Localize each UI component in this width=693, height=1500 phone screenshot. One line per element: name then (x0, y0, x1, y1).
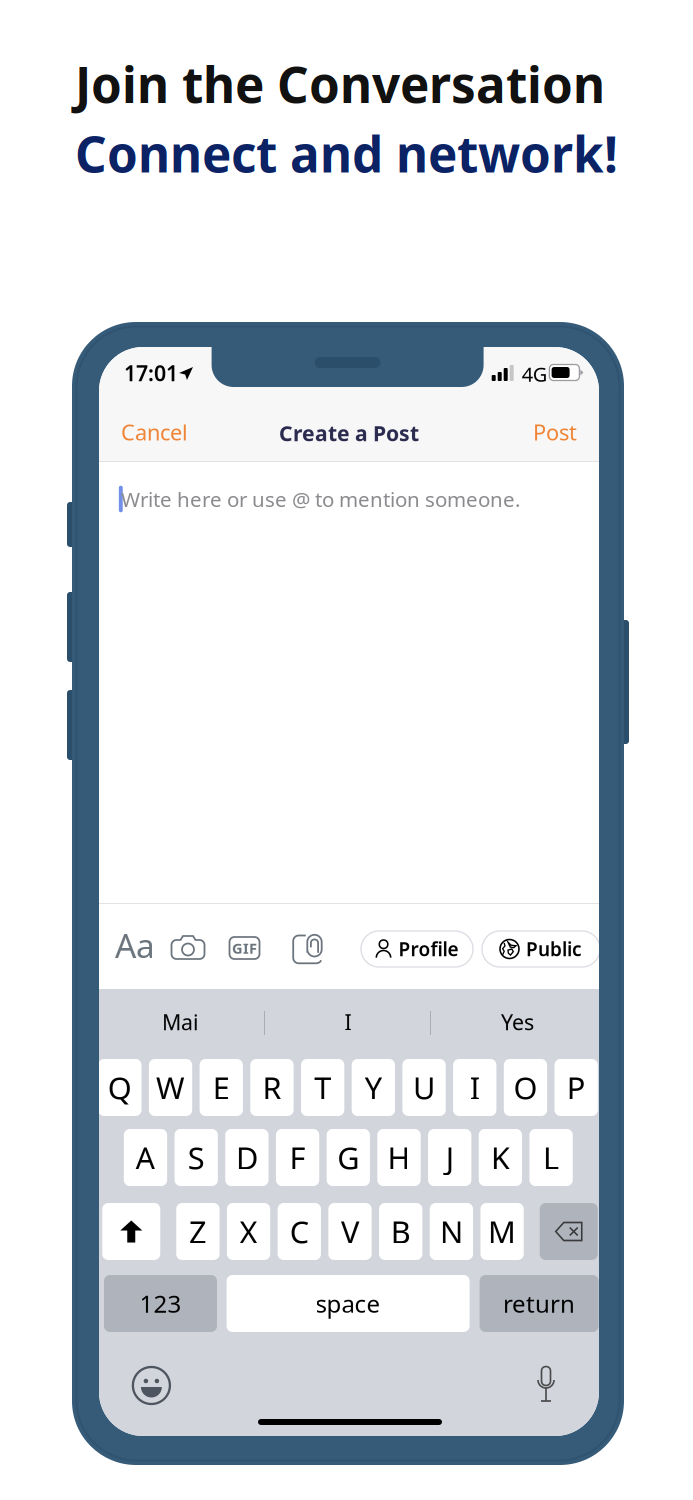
button[interactable]: Text formatting (113, 925, 157, 965)
button[interactable]: Camera (170, 935, 205, 960)
button[interactable]: W (149, 1059, 192, 1116)
button[interactable]: H (377, 1129, 421, 1186)
staticText: T (314, 1067, 331, 1108)
button[interactable]: Emoji (133, 1367, 170, 1404)
staticText: Post (533, 417, 577, 447)
staticText: U (413, 1067, 435, 1108)
staticText: Mai (162, 1008, 199, 1036)
staticText: Profile (398, 936, 458, 962)
button[interactable]: GIF (229, 937, 259, 959)
button[interactable]: Y (352, 1059, 395, 1116)
button[interactable]: P (554, 1059, 598, 1116)
button[interactable]: S (174, 1129, 218, 1186)
button[interactable]: Profile (361, 931, 473, 967)
button[interactable]: space (227, 1275, 470, 1332)
staticText: V (341, 1211, 359, 1252)
staticText: I (470, 1067, 480, 1108)
button[interactable]: Post (489, 416, 577, 448)
button[interactable]: I (453, 1059, 496, 1116)
button[interactable]: Attach file (292, 934, 323, 964)
staticText: Q (108, 1067, 132, 1108)
staticText: Public (526, 936, 582, 962)
button[interactable]: N (430, 1203, 473, 1260)
button[interactable]: K (479, 1129, 522, 1186)
staticText: G (337, 1137, 359, 1178)
button[interactable]: M (480, 1203, 524, 1260)
staticText: F (290, 1137, 306, 1178)
button[interactable]: V (328, 1203, 372, 1260)
staticText: Join the Conversation (75, 51, 605, 116)
button[interactable]: G (327, 1129, 370, 1186)
staticText: return (503, 1288, 575, 1319)
button[interactable]: X (227, 1203, 270, 1260)
button[interactable]: D (225, 1129, 268, 1186)
staticText: P (567, 1067, 586, 1108)
staticText: W (156, 1067, 185, 1108)
staticText: R (262, 1067, 281, 1108)
staticText: GIF (232, 938, 257, 958)
staticText: Cancel (121, 417, 188, 447)
button[interactable]: I (268, 1007, 428, 1037)
button[interactable]: return (480, 1275, 599, 1332)
staticText: 123 (139, 1288, 181, 1319)
staticText: H (387, 1137, 410, 1178)
button[interactable]: J (428, 1129, 471, 1186)
staticText: A (135, 1137, 155, 1178)
button[interactable]: Delete (540, 1203, 598, 1260)
staticText: B (391, 1211, 411, 1252)
staticText: L (543, 1137, 559, 1178)
button[interactable]: R (250, 1059, 294, 1116)
button[interactable]: L (529, 1129, 573, 1186)
staticText: D (236, 1137, 258, 1178)
button[interactable]: Cancel (121, 416, 211, 448)
button[interactable]: T (301, 1059, 344, 1116)
staticText: E (213, 1067, 230, 1108)
button[interactable]: O (504, 1059, 547, 1116)
button[interactable]: E (200, 1059, 243, 1116)
staticText: X (240, 1211, 258, 1252)
staticText: 4G (522, 361, 548, 387)
staticText: S (188, 1137, 205, 1178)
staticText: N (440, 1211, 463, 1252)
staticText: O (513, 1067, 537, 1108)
button[interactable]: Shift (102, 1203, 160, 1260)
staticText: Create a Post (279, 419, 419, 447)
staticText: M (488, 1211, 516, 1252)
button[interactable]: C (278, 1203, 321, 1260)
button[interactable]: Public (482, 931, 600, 967)
staticText: Aa (115, 923, 155, 967)
button[interactable]: Mai (100, 1007, 261, 1037)
button[interactable]: A (124, 1129, 167, 1186)
staticText: space (316, 1288, 381, 1319)
button[interactable]: 123 (104, 1275, 217, 1332)
staticText: C (290, 1211, 309, 1252)
button[interactable]: U (402, 1059, 446, 1116)
button[interactable]: Q (98, 1059, 141, 1116)
staticText: Z (189, 1211, 207, 1252)
staticText: J (446, 1137, 454, 1178)
staticText: K (491, 1137, 510, 1178)
button[interactable]: B (379, 1203, 422, 1260)
button[interactable]: Yes (437, 1007, 598, 1037)
staticText: Yes (501, 1008, 534, 1036)
button[interactable]: Z (176, 1203, 219, 1260)
staticText: Connect and network! (75, 120, 618, 186)
staticText: I (344, 1008, 351, 1036)
button[interactable]: Dictation (533, 1365, 559, 1403)
button[interactable]: F (276, 1129, 319, 1186)
staticText: Write here or use @ to mention someone. (121, 485, 520, 513)
staticText: 17:01 (124, 358, 178, 388)
staticText: Y (365, 1067, 382, 1108)
